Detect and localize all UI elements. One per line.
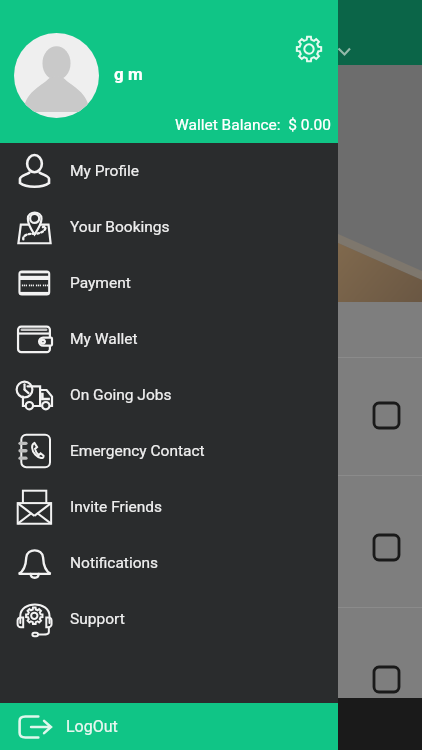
button[interactable]: Invite Friends [0, 479, 338, 535]
button[interactable]: Emergency Contact [0, 423, 338, 479]
button[interactable]: Collapse [333, 38, 357, 62]
button[interactable]: Support [0, 591, 338, 647]
button[interactable]: LogOut [0, 703, 338, 750]
staticText: My Wallet [70, 330, 138, 348]
staticText: Payment [70, 274, 131, 292]
staticText: Invite Friends [70, 498, 163, 516]
button[interactable]: Select item [0, 607, 422, 739]
button[interactable]: On Going Jobs [0, 367, 338, 423]
button[interactable]: My Profile [0, 143, 338, 199]
staticText: g m [114, 64, 143, 84]
button[interactable]: Notifications [0, 535, 338, 591]
button[interactable]: Select item [374, 535, 399, 560]
button[interactable]: My Wallet [0, 311, 338, 367]
button[interactable]: Your Bookings [0, 199, 338, 255]
button[interactable]: Select item [374, 667, 399, 692]
staticText: On Going Jobs [70, 386, 172, 404]
staticText: Wallet Balance: $ 0.00 [175, 116, 332, 134]
staticText: Support [70, 610, 125, 628]
button[interactable]: Settings [295, 35, 323, 63]
staticText: My Profile [70, 162, 140, 180]
staticText: Notifications [70, 554, 159, 572]
button[interactable]: Select item [0, 357, 422, 475]
staticText: Your Bookings [70, 218, 170, 236]
button[interactable]: Select item [0, 475, 422, 607]
staticText: LogOut [66, 717, 118, 736]
button[interactable]: Payment [0, 255, 338, 311]
staticText: Emergency Contact [70, 442, 205, 460]
button[interactable]: Select item [374, 403, 399, 428]
